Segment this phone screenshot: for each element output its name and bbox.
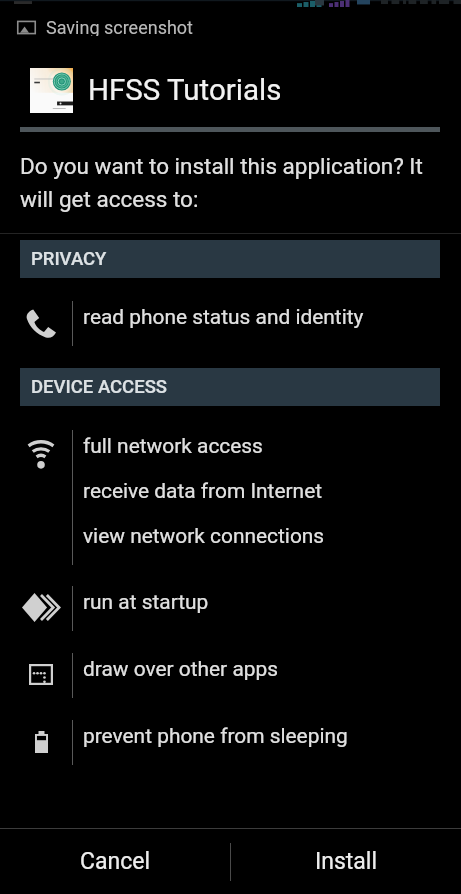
button[interactable]: Install (231, 829, 461, 894)
staticText: HFSS Tutorials (88, 73, 282, 108)
staticText: DEVICE ACCESS (31, 376, 167, 398)
staticText: draw over other apps (83, 657, 278, 681)
staticText: PRIVACY (31, 248, 107, 270)
button[interactable]: Cancel (0, 829, 230, 894)
staticText: receive data from Internet (83, 479, 323, 503)
staticText: Install (315, 848, 378, 875)
staticText: read phone status and identity (83, 305, 364, 329)
staticText: full network access (83, 434, 263, 458)
staticText: Cancel (80, 848, 151, 875)
staticText: prevent phone from sleeping (83, 724, 348, 748)
staticText: view network connections (83, 524, 325, 548)
staticText: Do you want to install this application?… (20, 153, 451, 213)
staticText: Saving screenshot (46, 17, 193, 36)
staticText: run at startup (83, 590, 209, 614)
